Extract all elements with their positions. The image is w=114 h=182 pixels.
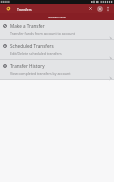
- staticText: Transfer funds from account to account: [10, 31, 75, 36]
- button[interactable]: Scheduled Transfers: [0, 40, 114, 60]
- staticText: Make a Transfer: [10, 23, 45, 29]
- staticText: Transfers: [17, 7, 32, 11]
- button[interactable]: Transfer History: [0, 60, 114, 80]
- button[interactable]: Camera: [95, 4, 104, 13]
- button[interactable]: Make a Transfer: [0, 20, 114, 40]
- staticText: Scheduled Transfers: [10, 43, 54, 49]
- staticText: Transfer History: [10, 63, 45, 69]
- button[interactable]: Close: [86, 4, 95, 13]
- button[interactable]: Transfer Funds: [0, 13, 114, 20]
- staticText: View completed transfers by account: [10, 71, 71, 76]
- staticText: Transfer Funds: [48, 15, 66, 18]
- staticText: Edit/Delete scheduled transfers: [10, 51, 62, 56]
- button[interactable]: More options: [104, 5, 112, 13]
